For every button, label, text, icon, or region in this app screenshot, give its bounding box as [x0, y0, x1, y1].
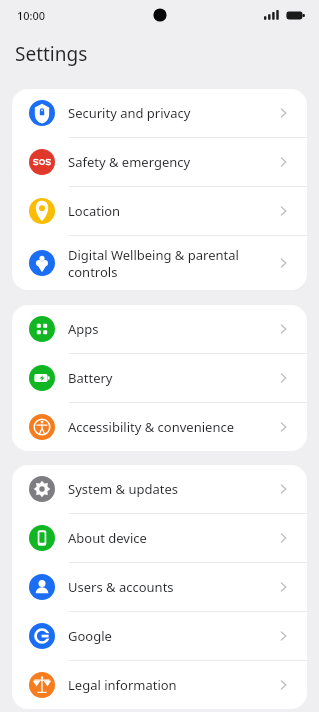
other: Open Accessibility & convenience	[276, 418, 294, 436]
button[interactable]: Apps	[12, 305, 307, 353]
button[interactable]: Accessibility & convenience	[12, 403, 307, 451]
staticText: About device	[68, 529, 270, 547]
button[interactable]: Users & accounts	[12, 563, 307, 611]
other: Open Digital Wellbeing & parental contro…	[276, 254, 294, 272]
staticText: Google	[68, 627, 270, 645]
other: Open Safety & emergency	[276, 153, 294, 171]
button[interactable]: About device	[12, 514, 307, 562]
other: Open Users & accounts	[276, 578, 294, 596]
button[interactable]: Safety & emergency	[12, 138, 307, 186]
other: Open Legal information	[276, 676, 294, 694]
other: Open About device	[276, 529, 294, 547]
button[interactable]: Security and privacy	[12, 89, 307, 137]
staticText: Users & accounts	[68, 578, 270, 596]
staticText: Location	[68, 202, 270, 220]
button[interactable]: Legal information	[12, 661, 307, 709]
button[interactable]: Location	[12, 187, 307, 235]
button[interactable]: Digital Wellbeing & parental controls	[12, 236, 307, 290]
staticText: Safety & emergency	[68, 153, 270, 171]
staticText: Digital Wellbeing & parental controls	[68, 246, 270, 281]
staticText: Accessibility & convenience	[68, 418, 270, 436]
staticText: Battery	[68, 369, 270, 387]
other: Open Battery	[276, 369, 294, 387]
button[interactable]: System & updates	[12, 465, 307, 513]
staticText: System & updates	[68, 480, 270, 498]
staticText: 10:00	[17, 8, 46, 23]
other: Open Security and privacy	[276, 104, 294, 122]
other: Open Google	[276, 627, 294, 645]
other: Open Location	[276, 202, 294, 220]
staticText: Security and privacy	[68, 104, 270, 122]
button[interactable]: Google	[12, 612, 307, 660]
other: Open System & updates	[276, 480, 294, 498]
other: Open Apps	[276, 320, 294, 338]
staticText: Apps	[68, 320, 270, 338]
staticText: Legal information	[68, 676, 270, 694]
staticText: Settings	[15, 41, 88, 67]
button[interactable]: Battery	[12, 354, 307, 402]
